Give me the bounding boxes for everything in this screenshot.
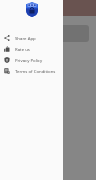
staticText: Share App xyxy=(15,35,36,41)
other: Share App xyxy=(4,35,10,41)
other: Privacy Policy xyxy=(4,57,10,63)
button[interactable]: Privacy Policy xyxy=(0,54,63,65)
button[interactable]: Share App xyxy=(0,32,63,43)
other: VPN app logo xyxy=(26,2,38,17)
staticText: Terms of Conditions xyxy=(15,68,56,74)
button[interactable]: Rate us xyxy=(0,43,63,54)
staticText: Rate us xyxy=(15,46,30,52)
staticText: Privacy Policy xyxy=(15,57,43,63)
button[interactable]: Terms of Conditions xyxy=(0,65,63,76)
other: Terms of Conditions xyxy=(4,68,10,74)
other: Rate us xyxy=(4,46,10,52)
